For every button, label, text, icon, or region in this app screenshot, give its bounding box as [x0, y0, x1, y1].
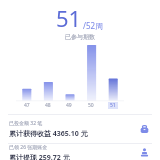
staticText: 累计获得收益 4365.10 元 — [9, 129, 88, 139]
staticText: 50 — [88, 102, 94, 109]
button[interactable]: 已领 26 张期账金 — [0, 144, 160, 160]
other: Savings details — [136, 121, 152, 137]
staticText: 47 — [24, 102, 30, 109]
staticText: 已领 26 张期账金 — [9, 144, 48, 151]
staticText: 51 — [56, 3, 82, 33]
staticText: 51 — [110, 102, 116, 109]
staticText: /52周 — [83, 20, 104, 31]
staticText: 49 — [66, 102, 72, 109]
staticText: 48 — [45, 102, 51, 109]
button[interactable]: 已投金额 32 笔 — [0, 115, 160, 143]
staticText: 已投金额 32 笔 — [9, 120, 43, 127]
other: Withdraw details — [136, 144, 152, 160]
staticText: 累计提现 259.72 元 — [9, 153, 70, 160]
staticText: 已参与期数 — [65, 33, 95, 41]
